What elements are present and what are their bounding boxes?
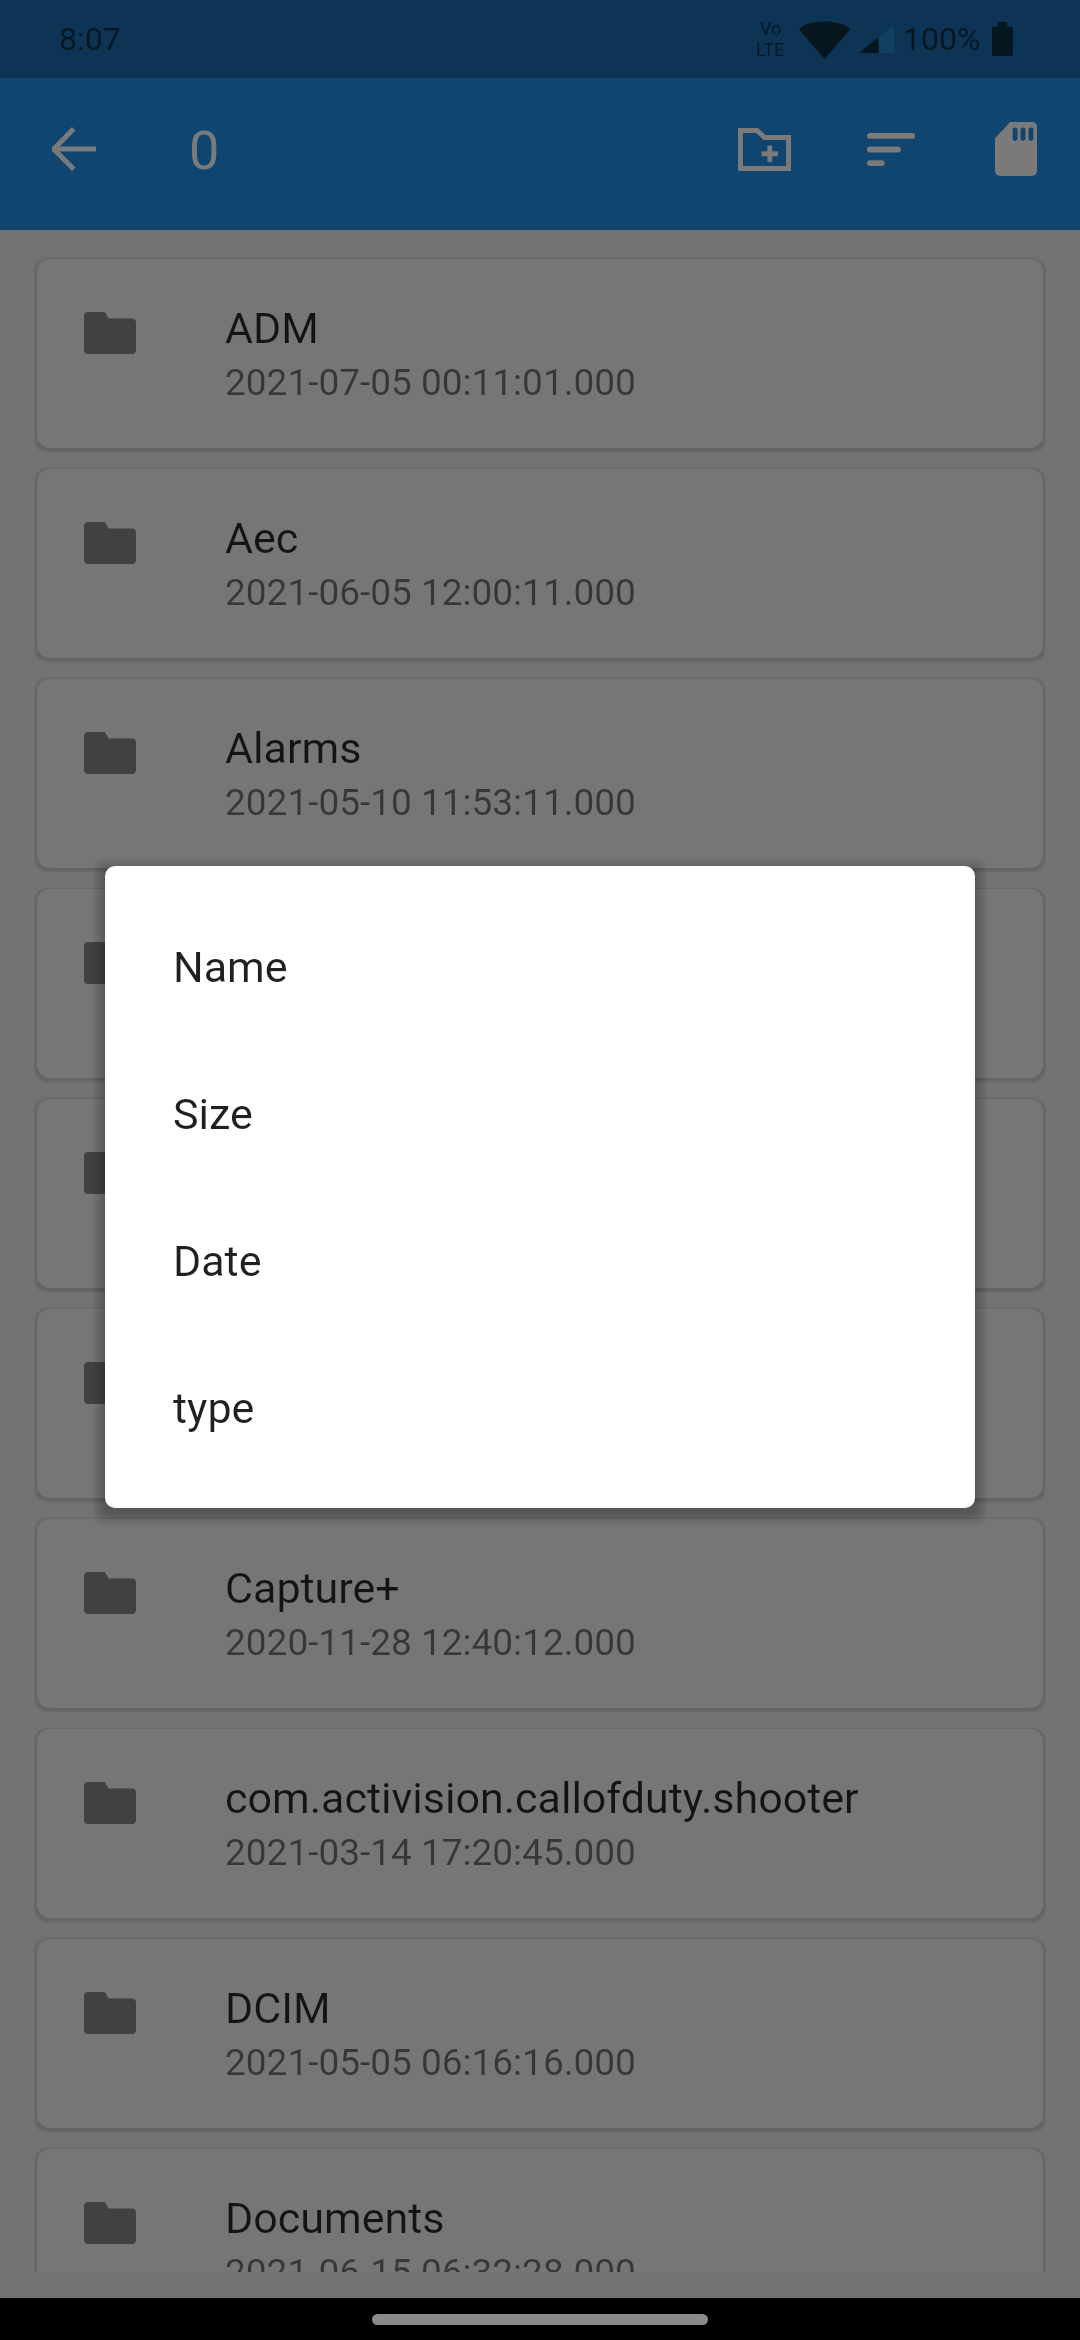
staticText: 2020-11-28 12:40:12.000 (225, 1621, 636, 1664)
button[interactable]: type (105, 1334, 975, 1481)
staticText: 2021-05-10 11:53:11.000 (225, 781, 636, 824)
button[interactable]: Browser (37, 1309, 1043, 1498)
staticText: com.activision.callofduty.shooter (225, 1773, 859, 1823)
staticText: Name (173, 942, 288, 992)
button[interactable]: Date (105, 1187, 975, 1334)
button[interactable]: Android (37, 889, 1043, 1078)
staticText: Aec (225, 513, 299, 563)
button[interactable]: Audiobooks (37, 1099, 1043, 1288)
button[interactable]: ADM (37, 259, 1043, 448)
staticText: 2021-05-05 06:16:16.000 (225, 2041, 636, 2084)
button[interactable]: Alarms (37, 679, 1043, 868)
staticText: ADM (225, 303, 319, 353)
button[interactable]: Back (0, 78, 147, 220)
staticText: Android (225, 933, 375, 983)
staticText: 2021-06-05 12:00:11.000 (225, 571, 636, 614)
staticText: 100% (903, 20, 981, 58)
button[interactable]: New folder (696, 78, 824, 220)
staticText: 2021-07-05 00:11:01.000 (225, 361, 636, 404)
button[interactable]: DCIM (37, 1939, 1043, 2128)
button[interactable]: Sort (824, 78, 952, 220)
button[interactable]: SD card storage (952, 78, 1080, 220)
staticText: DCIM (225, 1983, 331, 2033)
staticText: Size (173, 1089, 253, 1139)
staticText: Alarms (225, 723, 362, 773)
staticText: Date (173, 1236, 262, 1286)
staticText: 0 (189, 119, 220, 182)
button[interactable]: com.activision.callofduty.shooter (37, 1729, 1043, 1918)
button[interactable]: Size (105, 1040, 975, 1187)
staticText: 8:07 (59, 20, 121, 58)
staticText: Capture+ (225, 1563, 400, 1613)
staticText: 2021-02-01 09:01:12.000 (225, 1411, 636, 1454)
staticText: type (173, 1383, 255, 1433)
button[interactable]: Capture+ (37, 1519, 1043, 1708)
button[interactable]: Name (105, 893, 975, 1040)
staticText: Vo (760, 18, 782, 39)
staticText: 2021-03-14 17:20:45.000 (225, 1831, 636, 1874)
button[interactable]: Documents (37, 2149, 1043, 2272)
staticText: Browser (225, 1353, 383, 1403)
staticText: 2021-06-15 06:32:28.000 (225, 2251, 636, 2272)
staticText: Documents (225, 2193, 445, 2243)
staticText: LTE (756, 39, 785, 60)
button[interactable]: Aec (37, 469, 1043, 658)
